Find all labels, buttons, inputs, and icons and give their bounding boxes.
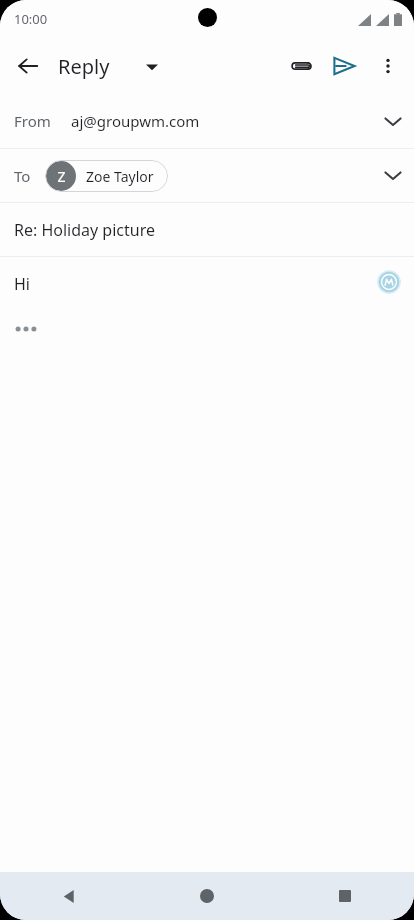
staticText: 10:00: [14, 10, 48, 28]
button[interactable]: Back: [6, 44, 50, 88]
staticText: Reply: [58, 53, 110, 80]
button[interactable]: Show quoted text: [12, 321, 40, 337]
staticText: Z: [57, 167, 66, 186]
button[interactable]: Reply: [54, 47, 162, 86]
button[interactable]: Re: Holiday picture: [0, 203, 414, 256]
button[interactable]: Back: [0, 872, 138, 920]
staticText: From: [14, 111, 51, 131]
button[interactable]: Hi: [0, 257, 414, 337]
button[interactable]: Motorola assistant: [377, 270, 401, 294]
button[interactable]: Home: [138, 872, 276, 920]
button[interactable]: Recent apps: [276, 872, 414, 920]
button[interactable]: Attach file: [278, 44, 322, 88]
staticText: Zoe Taylor: [86, 167, 154, 186]
button[interactable]: Send: [322, 44, 366, 88]
button[interactable]: To: [0, 149, 414, 202]
button[interactable]: Z: [45, 160, 168, 192]
staticText: To: [14, 166, 31, 186]
staticText: Hi: [14, 273, 30, 295]
button[interactable]: From: [0, 94, 414, 148]
staticText: Re: Holiday picture: [14, 219, 155, 241]
button[interactable]: More options: [366, 44, 410, 88]
staticText: aj@groupwm.com: [71, 111, 200, 131]
